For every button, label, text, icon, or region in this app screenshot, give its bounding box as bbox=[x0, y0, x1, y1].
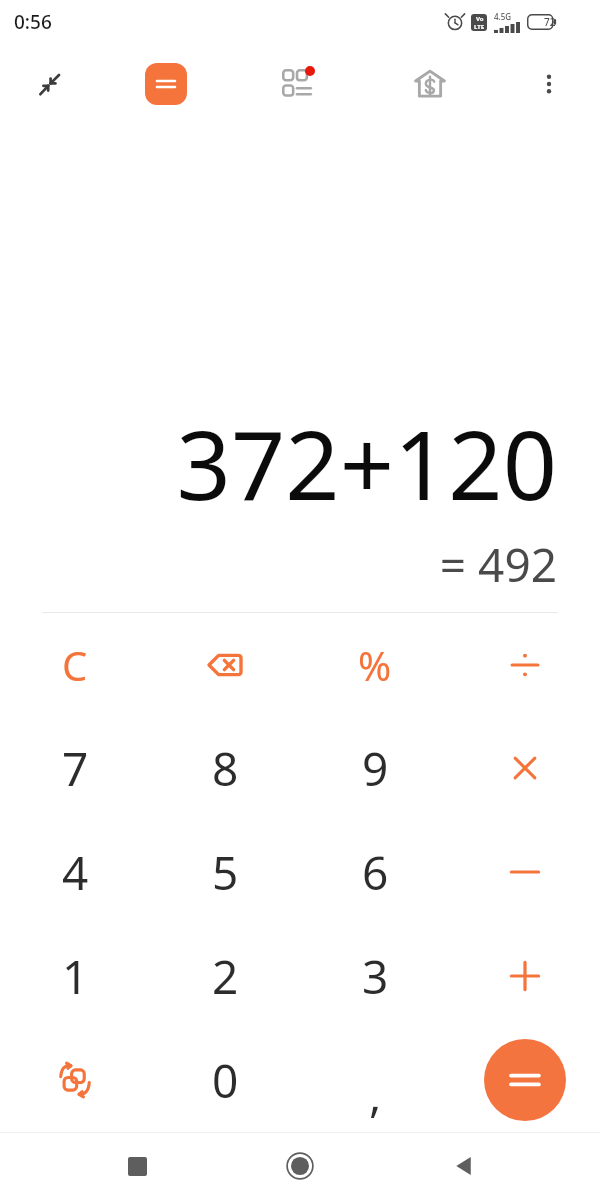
button[interactable]: Equals bbox=[484, 1039, 566, 1121]
button[interactable]: % bbox=[300, 613, 450, 716]
staticText: , bbox=[369, 1063, 382, 1126]
staticText: = 492 bbox=[439, 533, 557, 596]
button[interactable]: C bbox=[0, 613, 150, 716]
other: Plus bbox=[503, 954, 547, 998]
staticText: 1 bbox=[62, 945, 89, 1008]
button[interactable]: Collapse bbox=[22, 56, 78, 112]
button[interactable]: Home bbox=[273, 1139, 327, 1193]
button[interactable]: Multiply bbox=[450, 716, 600, 820]
staticText: 9 bbox=[362, 737, 389, 800]
button[interactable]: 6 bbox=[300, 820, 450, 924]
staticText: 2 bbox=[212, 945, 239, 1008]
button[interactable]: Minus bbox=[450, 820, 600, 924]
other: Divide bbox=[503, 643, 547, 687]
staticText: 4.5G bbox=[494, 11, 512, 22]
button[interactable]: Equals bbox=[450, 1028, 600, 1132]
button[interactable]: , bbox=[300, 1028, 450, 1132]
other: Minus bbox=[503, 850, 547, 894]
staticText: % bbox=[358, 638, 392, 692]
button[interactable]: Divide bbox=[450, 613, 600, 716]
button[interactable]: Unit converter bbox=[0, 1028, 150, 1132]
staticText: Vo bbox=[476, 15, 484, 23]
staticText: 72 bbox=[544, 15, 556, 29]
button[interactable]: 0 bbox=[150, 1028, 300, 1132]
staticText: 3 bbox=[362, 945, 389, 1008]
button[interactable]: 5 bbox=[150, 820, 300, 924]
button[interactable]: Mortgage bbox=[402, 56, 458, 112]
button[interactable]: Backspace bbox=[150, 613, 300, 716]
other: Backspace bbox=[203, 643, 247, 687]
button[interactable]: More options bbox=[521, 56, 577, 112]
other: Multiply bbox=[503, 746, 547, 790]
staticText: 0:56 bbox=[14, 9, 52, 35]
staticText: 372+120 bbox=[176, 398, 557, 527]
button[interactable]: Back bbox=[437, 1139, 491, 1193]
button[interactable]: 1 bbox=[0, 924, 150, 1028]
staticText: 7 bbox=[62, 737, 89, 800]
button[interactable]: 9 bbox=[300, 716, 450, 820]
button[interactable]: 7 bbox=[0, 716, 150, 820]
staticText: 0 bbox=[212, 1049, 239, 1112]
button[interactable]: 8 bbox=[150, 716, 300, 820]
staticText: 8 bbox=[212, 737, 239, 800]
staticText: 5 bbox=[212, 841, 239, 904]
button[interactable]: Calculator bbox=[138, 56, 194, 112]
button[interactable]: Categories bbox=[269, 56, 325, 112]
button[interactable]: Plus bbox=[450, 924, 600, 1028]
staticText: 6 bbox=[362, 841, 389, 904]
button[interactable]: Recents bbox=[110, 1139, 164, 1193]
button[interactable]: 2 bbox=[150, 924, 300, 1028]
staticText: LTE bbox=[474, 23, 485, 31]
other: Unit converter bbox=[51, 1056, 99, 1104]
button[interactable]: 4 bbox=[0, 820, 150, 924]
staticText: 4 bbox=[62, 841, 89, 904]
button[interactable]: 3 bbox=[300, 924, 450, 1028]
staticText: C bbox=[62, 638, 88, 692]
